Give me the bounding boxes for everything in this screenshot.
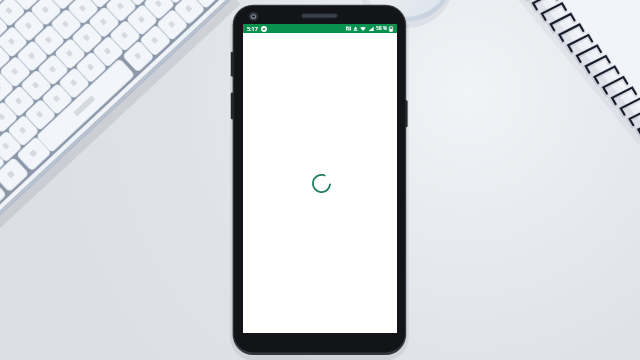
button[interactable]: Loading	[312, 174, 331, 193]
staticText: 58 %	[376, 25, 388, 32]
staticText: 5:17	[247, 25, 258, 32]
